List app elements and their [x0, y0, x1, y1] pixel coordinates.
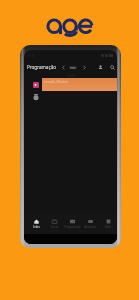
staticText: Programação — [64, 225, 81, 229]
staticText: Canais — [50, 225, 59, 229]
staticText: Jornada, Mistério — [44, 80, 69, 84]
button[interactable]: Assistidos — [81, 212, 99, 234]
staticText: Início — [33, 225, 40, 229]
button[interactable]: Buscar — [108, 63, 116, 71]
button[interactable]: Mais — [99, 212, 117, 234]
staticText: Programação — [27, 64, 57, 70]
staticText: Assistidos — [84, 225, 97, 229]
button[interactable]: Dia anterior — [60, 64, 67, 71]
staticText: Mais — [105, 225, 111, 229]
staticText: 18:00 — [67, 74, 76, 78]
staticText: 9:41 — [28, 53, 35, 58]
button[interactable]: Jornada, Mistério — [42, 78, 117, 91]
button[interactable]: Programação — [63, 212, 81, 234]
button[interactable]: Perfil — [96, 63, 104, 71]
button[interactable]: hoje — [69, 66, 77, 69]
button[interactable]: Canais — [45, 212, 63, 234]
button[interactable]: Início — [27, 212, 45, 234]
staticText: hoje — [70, 66, 76, 69]
button[interactable]: Próximo dia — [81, 64, 88, 71]
